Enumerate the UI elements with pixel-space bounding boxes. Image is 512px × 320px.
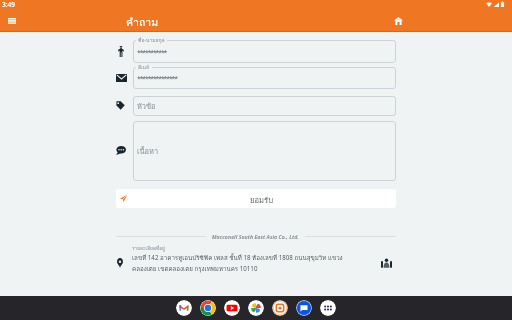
button[interactable]: All apps (320, 300, 336, 316)
button[interactable]: Chrome (200, 300, 216, 316)
button[interactable]: ยอมรับ (116, 189, 396, 208)
button[interactable]: Subject (116, 101, 125, 110)
staticText: รายละเอียดที่อยู่ (132, 244, 165, 252)
button[interactable]: Home (389, 12, 407, 30)
staticText: 3:49 (2, 0, 15, 9)
staticText: *************** (137, 74, 177, 84)
staticText: *********** (137, 48, 167, 58)
button[interactable]: YouTube (224, 300, 240, 316)
button[interactable]: Messages (296, 300, 312, 316)
button[interactable]: Menu (3, 12, 20, 29)
button[interactable]: Gmail (176, 300, 192, 316)
button[interactable]: Photos (248, 300, 264, 316)
staticText: ชื่อ-นามสกุล (138, 36, 165, 44)
staticText: ยอมรับ (250, 194, 273, 206)
button[interactable]: Name (118, 46, 124, 57)
button[interactable]: หัวข้อ (133, 96, 396, 116)
button[interactable]: Location (117, 258, 123, 268)
button[interactable]: Camera (272, 300, 288, 316)
staticText: หัวข้อ (137, 100, 156, 112)
button[interactable]: Email (116, 74, 127, 82)
staticText: เลขที่ 142 อาคารทูเอนปริซิฟิค เพลส ชั้นท… (132, 253, 343, 274)
staticText: เนื้อหา (137, 145, 159, 157)
staticText: คำถาม (126, 14, 159, 31)
button[interactable]: Message (116, 146, 126, 155)
button[interactable]: *************** (133, 67, 396, 89)
staticText: Macconell South East Asia Co., Ltd. (212, 233, 299, 240)
staticText: อีเมล์ (138, 63, 150, 71)
button[interactable]: Open map (381, 258, 392, 268)
button[interactable]: เนื้อหา (133, 121, 396, 181)
button[interactable]: *********** (133, 40, 396, 63)
